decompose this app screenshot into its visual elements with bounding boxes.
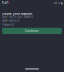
- staticText: Password: [2, 23, 14, 26]
- staticText: Continue: [25, 29, 39, 33]
- staticText: 9:41: [2, 1, 9, 5]
- staticText: Create your account: [2, 12, 32, 15]
- staticText: Email address: [2, 19, 19, 22]
- staticText: Sign up to get started: [2, 15, 33, 18]
- staticText: ııl ຈ ▮: [54, 1, 62, 5]
- button[interactable]: Continue: [2, 28, 62, 34]
